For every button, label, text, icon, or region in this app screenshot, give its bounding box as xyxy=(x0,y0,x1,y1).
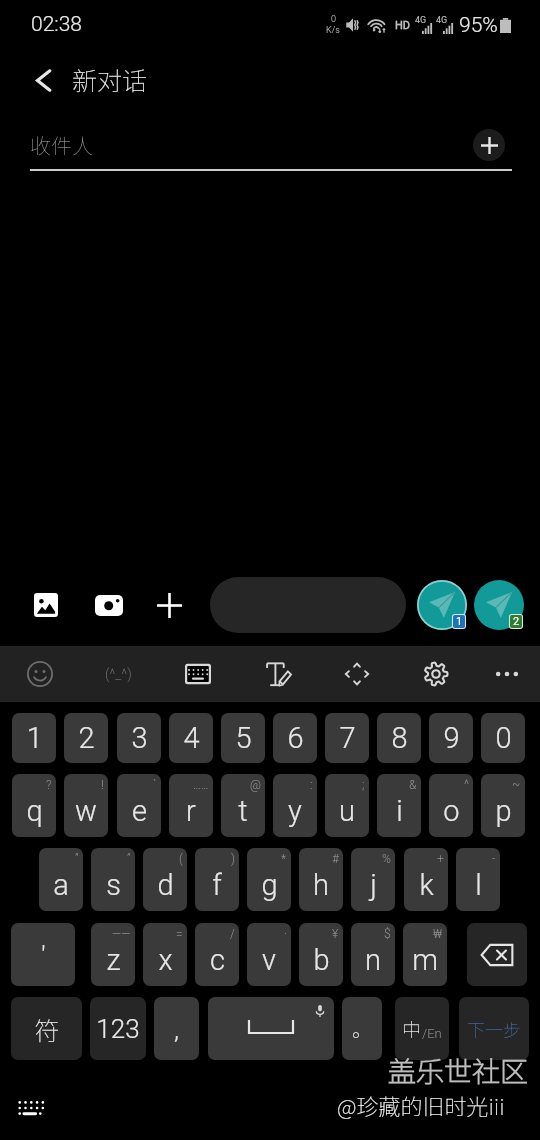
staticText: y xyxy=(288,794,302,828)
staticText: ? xyxy=(46,778,52,792)
button[interactable]: ! xyxy=(64,774,108,837)
button[interactable]: …… xyxy=(169,774,213,837)
button[interactable]: Emoji xyxy=(16,650,64,698)
staticText: : xyxy=(310,778,313,792)
button[interactable]: More attachments xyxy=(146,582,192,628)
staticText: o xyxy=(443,794,460,828)
staticText: # xyxy=(332,852,339,866)
button[interactable]: 123 xyxy=(90,997,146,1060)
staticText: 4G xyxy=(415,15,427,26)
button[interactable]: % xyxy=(351,848,395,911)
button[interactable]: : xyxy=(273,774,317,837)
staticText: a xyxy=(53,868,69,902)
button[interactable]: 4 xyxy=(169,713,213,763)
staticText: HD xyxy=(395,19,411,32)
staticText: 下一步 xyxy=(467,1016,521,1042)
staticText: s xyxy=(106,868,121,902)
button[interactable]: ? xyxy=(12,774,56,837)
button[interactable]: ” xyxy=(39,848,83,911)
button[interactable]: , xyxy=(154,997,199,1060)
button[interactable]: 9 xyxy=(429,713,473,763)
staticText: d xyxy=(157,868,174,902)
button[interactable]: # xyxy=(299,848,343,911)
button[interactable]: ( xyxy=(143,848,187,911)
button[interactable]: ) xyxy=(195,848,239,911)
button[interactable]: Send with SIM 1 xyxy=(417,580,467,630)
button[interactable]: - xyxy=(456,848,500,911)
button[interactable]: + xyxy=(404,848,448,911)
staticText: 5 xyxy=(235,721,252,755)
button[interactable]: 7 xyxy=(325,713,369,763)
button[interactable]: 3 xyxy=(117,713,161,763)
staticText: 2 xyxy=(78,721,95,755)
staticText: w xyxy=(75,794,97,828)
button[interactable]: More options xyxy=(483,650,531,698)
button[interactable]: Handwriting xyxy=(254,650,302,698)
staticText: 0 xyxy=(495,721,512,755)
button[interactable]: $ xyxy=(351,923,395,986)
staticText: 4 xyxy=(183,721,200,755)
staticText: b xyxy=(313,943,330,977)
button[interactable]: 2 xyxy=(64,713,108,763)
button[interactable]: Add recipient xyxy=(473,129,505,161)
staticText: i xyxy=(396,794,403,828)
staticText: ^ xyxy=(464,778,469,792)
button[interactable]: ¥ xyxy=(299,923,343,986)
button[interactable]: Gallery xyxy=(23,582,69,628)
button[interactable]: @ xyxy=(221,774,265,837)
button[interactable]: Resize keyboard xyxy=(333,650,381,698)
staticText: n xyxy=(365,943,381,977)
button[interactable]: Camera xyxy=(86,582,132,628)
button[interactable]: 8 xyxy=(377,713,421,763)
button[interactable]: ; xyxy=(325,774,369,837)
button[interactable]: Settings xyxy=(412,650,460,698)
button[interactable]: ~ xyxy=(481,774,525,837)
staticText: p xyxy=(495,794,512,828)
button[interactable]: Hide keyboard xyxy=(17,1100,43,1117)
staticText: g xyxy=(261,868,278,902)
button[interactable]: = xyxy=(143,923,187,986)
staticText: u xyxy=(339,794,355,828)
button[interactable]: 6 xyxy=(273,713,317,763)
staticText: + xyxy=(437,852,444,866)
staticText: ₩ xyxy=(433,927,443,941)
button[interactable]: —— xyxy=(91,923,135,986)
button[interactable]: ' xyxy=(11,923,75,986)
button[interactable]: Send with SIM 2 xyxy=(474,580,524,630)
button[interactable]: / xyxy=(195,923,239,986)
staticText: 4G xyxy=(436,15,448,26)
button[interactable]: Back xyxy=(21,58,65,102)
staticText: 1 xyxy=(456,615,463,628)
staticText: 3 xyxy=(131,721,148,755)
button[interactable]: Switch input language xyxy=(395,997,449,1060)
button[interactable]: Kaomoji xyxy=(90,650,146,698)
staticText: z xyxy=(106,943,121,977)
button[interactable]: Backspace xyxy=(467,923,527,986)
staticText: · xyxy=(284,927,287,941)
staticText: ; xyxy=(362,778,365,792)
button[interactable]: 。 xyxy=(342,997,382,1060)
staticText: @珍藏的旧时光iii xyxy=(337,1089,505,1121)
button[interactable]: ^ xyxy=(429,774,473,837)
button[interactable]: 1 xyxy=(12,713,56,763)
button[interactable]: ` xyxy=(117,774,161,837)
button[interactable]: * xyxy=(247,848,291,911)
staticText: 0 xyxy=(331,14,336,25)
button[interactable]: Space xyxy=(208,997,334,1060)
staticText: ” xyxy=(127,852,131,866)
button[interactable]: Message input xyxy=(210,577,406,633)
button[interactable]: 5 xyxy=(221,713,265,763)
staticText: x xyxy=(158,943,173,977)
button[interactable]: 符 xyxy=(11,997,82,1060)
button[interactable]: 0 xyxy=(481,713,525,763)
staticText: 6 xyxy=(287,721,304,755)
button[interactable]: ₩ xyxy=(403,923,447,986)
button[interactable]: · xyxy=(247,923,291,986)
staticText: 8 xyxy=(391,721,408,755)
button[interactable]: Keyboard layout xyxy=(174,650,222,698)
staticText: …… xyxy=(193,778,209,792)
button[interactable]: & xyxy=(377,774,421,837)
button[interactable]: 下一步 xyxy=(459,997,529,1060)
button[interactable]: ” xyxy=(91,848,135,911)
staticText: % xyxy=(382,852,391,866)
